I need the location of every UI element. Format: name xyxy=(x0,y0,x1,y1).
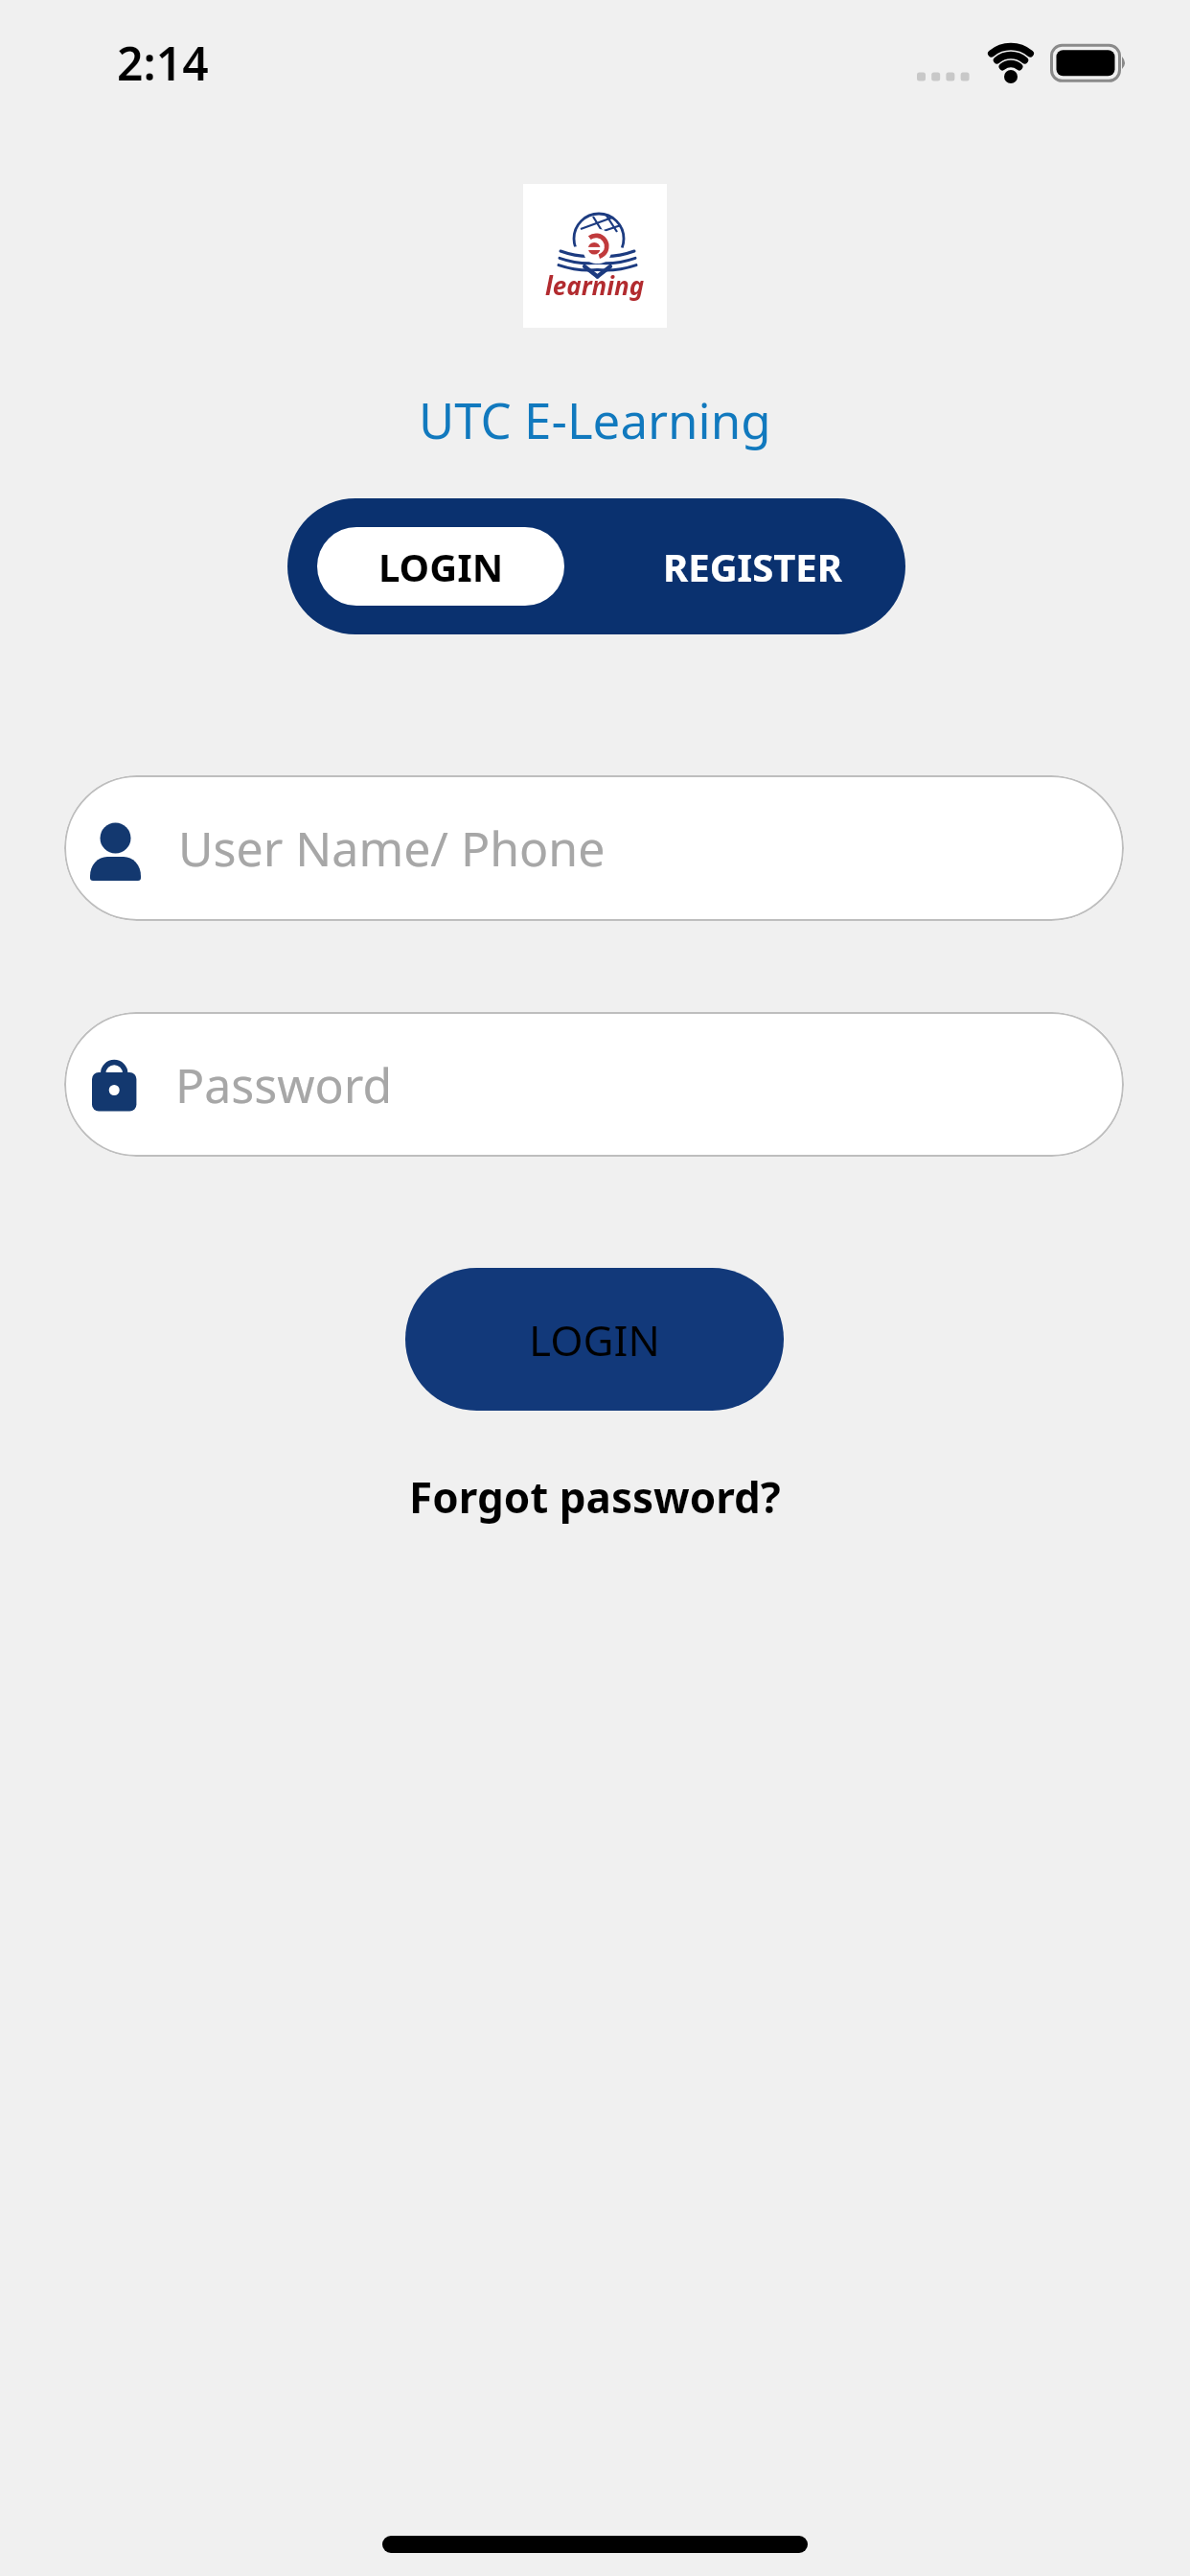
button[interactable]: LOGIN xyxy=(317,527,564,606)
staticText: 2:14 xyxy=(117,32,209,94)
staticText: LOGIN xyxy=(378,540,504,592)
button[interactable]: User Name/ Phone xyxy=(64,775,1124,921)
button[interactable]: Password xyxy=(64,1012,1124,1157)
button[interactable]: LOGIN xyxy=(405,1268,784,1411)
staticText: REGISTER xyxy=(663,540,842,592)
button[interactable]: REGISTER xyxy=(632,527,872,606)
button[interactable]: Forgot password? xyxy=(409,1468,781,1526)
staticText: LOGIN xyxy=(529,1311,660,1368)
staticText: User Name/ Phone xyxy=(178,816,606,881)
staticText: Password xyxy=(175,1052,393,1117)
staticText: UTC E-Learning xyxy=(419,386,771,452)
staticText: learning xyxy=(545,268,645,302)
staticText: Forgot password? xyxy=(409,1468,781,1526)
